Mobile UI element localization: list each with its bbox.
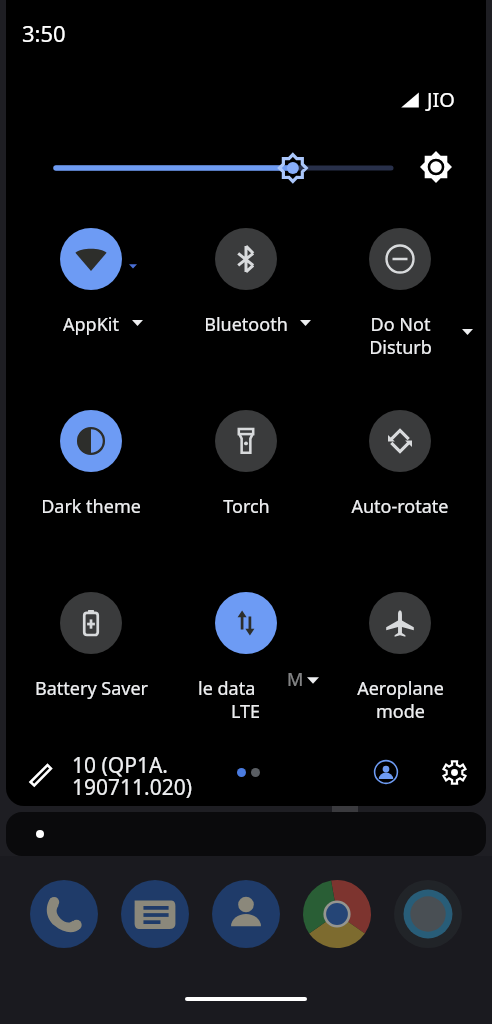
button[interactable]: App [212, 880, 280, 948]
button[interactable] [174, 592, 318, 654]
button[interactable] [328, 592, 472, 654]
staticText: Aeroplane mode [357, 676, 444, 723]
button[interactable]: App [121, 880, 189, 948]
button[interactable]: Settings [436, 754, 472, 790]
button[interactable]: Edit [22, 755, 60, 793]
staticText: Dark theme [41, 494, 141, 519]
button[interactable] [174, 228, 318, 290]
button[interactable] [19, 592, 163, 654]
button[interactable]: User [368, 754, 404, 790]
staticText: 3:50 [22, 18, 66, 48]
staticText: M [287, 667, 304, 692]
staticText: Auto-rotate [351, 494, 449, 519]
staticText: LTE [231, 699, 261, 724]
button[interactable] [328, 410, 472, 472]
staticText: Do Not Disturb [369, 312, 432, 359]
staticText: Torch [223, 494, 270, 519]
button[interactable] [19, 410, 163, 472]
staticText: le data [198, 676, 256, 701]
staticText: Bluetooth [204, 312, 288, 337]
button[interactable]: App [303, 880, 371, 948]
button[interactable]: Auto brightness [418, 149, 454, 185]
staticText: AppKit [63, 312, 119, 337]
button[interactable]: App [394, 880, 462, 948]
button[interactable] [19, 228, 163, 290]
button[interactable] [328, 228, 472, 290]
button[interactable]: App [30, 880, 98, 948]
staticText: 10 (QP1A. 190711.020) [72, 751, 193, 801]
button[interactable] [174, 410, 318, 472]
staticText: Battery Saver [35, 676, 148, 701]
staticText: JIO [427, 86, 455, 113]
